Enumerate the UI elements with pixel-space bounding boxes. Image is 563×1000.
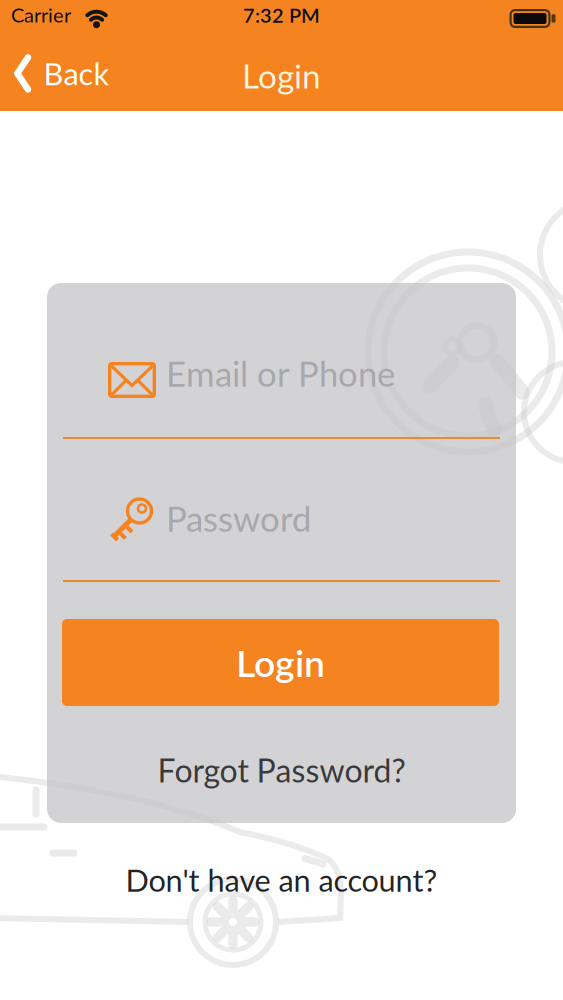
staticText: Email or Phone [166,353,395,394]
button[interactable]: Forgot Password? [157,751,405,789]
staticText: Carrier [11,3,71,26]
button[interactable]: Back [14,55,109,91]
staticText: Password [166,498,311,539]
staticText: Don't have an account? [125,862,437,898]
staticText: Forgot Password? [157,751,405,789]
button[interactable]: Login [62,619,499,706]
staticText: 7:32 PM [243,3,320,27]
staticText: Login [242,56,321,95]
staticText: Back [43,55,109,91]
button[interactable]: Don't have an account? [125,862,437,898]
staticText: Login [236,641,325,684]
